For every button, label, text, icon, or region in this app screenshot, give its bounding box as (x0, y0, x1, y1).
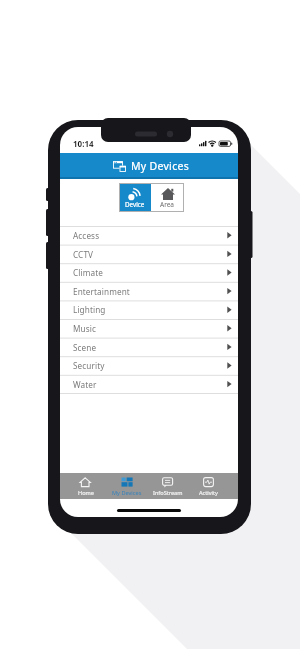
staticText: Music (73, 323, 96, 334)
staticText: Security (73, 360, 105, 371)
button[interactable]: Area (151, 183, 184, 212)
staticText: Climate (73, 267, 103, 278)
staticText: Home (78, 489, 94, 497)
staticText: My Devices (112, 489, 142, 497)
button[interactable]: Climate (60, 264, 238, 281)
staticText: Scene (73, 342, 97, 353)
button[interactable]: Activity (188, 473, 229, 499)
staticText: Activity (199, 489, 218, 497)
button[interactable]: Home (65, 473, 106, 499)
staticText: Water (73, 379, 97, 390)
staticText: CCTV (73, 249, 94, 260)
staticText: Entertainment (73, 286, 130, 297)
staticText: Area (160, 200, 175, 209)
staticText: Lighting (73, 304, 106, 315)
staticText: Access (73, 230, 100, 241)
button[interactable]: Access (60, 227, 238, 244)
button[interactable]: Device (119, 183, 151, 212)
staticText: InfoStream (153, 489, 183, 497)
button[interactable]: Security (60, 357, 238, 374)
button[interactable]: InfoStream (147, 473, 188, 499)
button[interactable]: Entertainment (60, 283, 238, 300)
staticText: 10:14 (73, 138, 94, 149)
button[interactable]: My Devices (106, 473, 147, 499)
staticText: Device (125, 200, 145, 209)
button[interactable]: Music (60, 320, 238, 337)
button[interactable]: CCTV (60, 246, 238, 263)
staticText: My Devices (131, 159, 190, 173)
button[interactable]: Lighting (60, 301, 238, 318)
button[interactable]: Water (60, 376, 238, 393)
button[interactable]: Scene (60, 339, 238, 356)
